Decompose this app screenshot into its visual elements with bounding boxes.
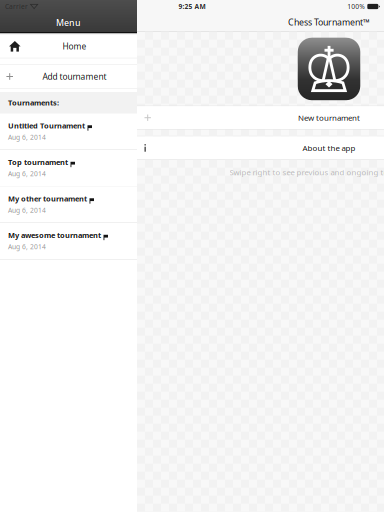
staticText: Swipe right to see previous and ongoing … xyxy=(229,167,384,177)
button[interactable]: About the app xyxy=(137,136,384,159)
button[interactable]: My other tournament xyxy=(0,186,137,222)
staticText: Untitled Tournament xyxy=(8,120,85,131)
staticText: Carrier xyxy=(5,2,28,11)
staticText: 9:25 AM xyxy=(178,2,205,11)
staticText: Top tournament xyxy=(8,157,68,167)
button[interactable]: Untitled Tournament xyxy=(0,113,137,149)
staticText: Chess Tournament™ xyxy=(288,16,370,28)
staticText: My awesome tournament xyxy=(8,230,101,240)
staticText: Tournaments: xyxy=(8,97,59,108)
button[interactable]: Top tournament xyxy=(0,150,137,186)
staticText: Add tournament xyxy=(42,71,106,82)
staticText: About the app xyxy=(302,142,355,153)
staticText: Home xyxy=(62,41,86,52)
staticText: Aug 6, 2014 xyxy=(8,242,46,251)
button[interactable]: Add tournament xyxy=(0,65,137,88)
staticText: Aug 6, 2014 xyxy=(8,133,46,142)
button[interactable]: Home xyxy=(0,35,137,58)
staticText: Menu xyxy=(56,16,81,28)
staticText: Aug 6, 2014 xyxy=(8,169,46,178)
staticText: New tournament xyxy=(298,112,360,123)
button[interactable]: New tournament xyxy=(137,106,384,129)
staticText: 100% xyxy=(347,2,365,11)
staticText: My other tournament xyxy=(8,193,87,204)
staticText: Aug 6, 2014 xyxy=(8,206,46,215)
button[interactable]: My awesome tournament xyxy=(0,223,137,259)
